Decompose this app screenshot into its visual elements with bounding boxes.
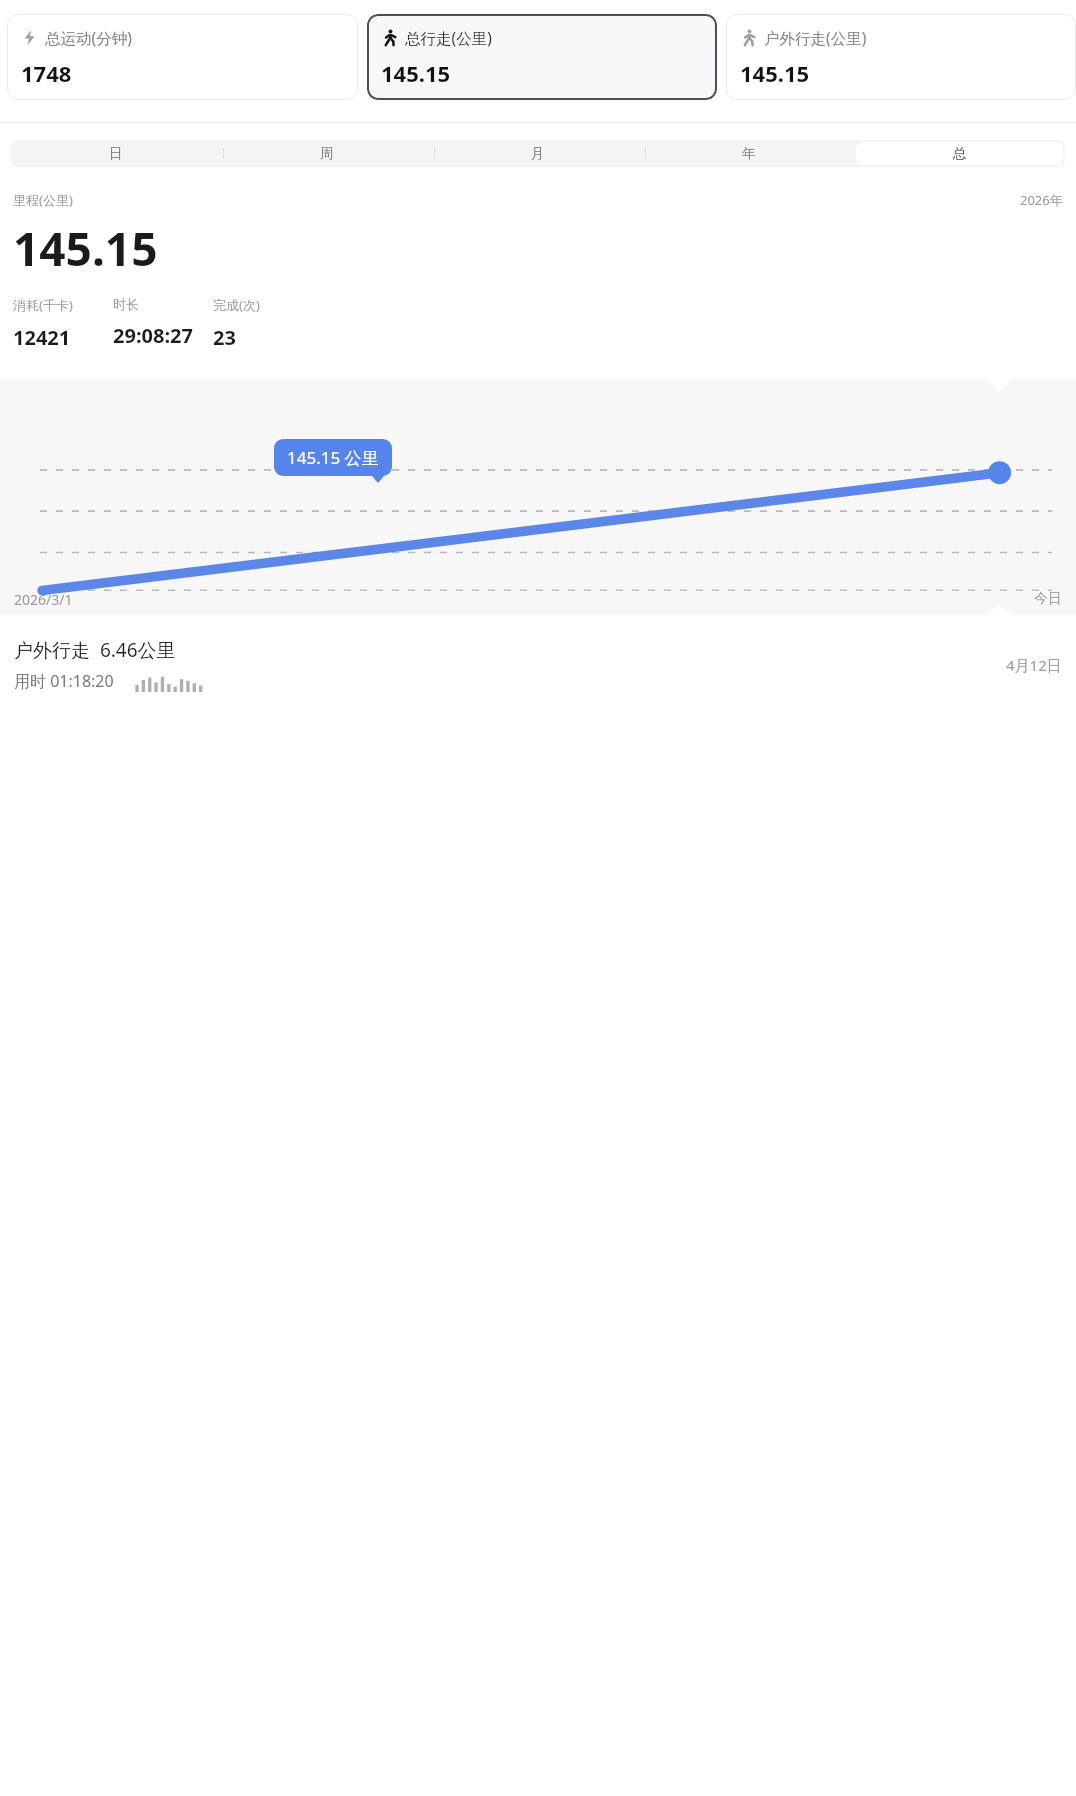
staticText: 今日 xyxy=(1034,590,1062,608)
staticText: 29:08:27 xyxy=(113,322,193,349)
staticText: 2026年 xyxy=(1020,191,1063,209)
staticText: 总运动(分钟) xyxy=(45,27,132,48)
button[interactable]: 户外行走 6.46公里 xyxy=(0,637,1076,692)
staticText: 月 xyxy=(531,145,545,162)
button[interactable]: 总 xyxy=(856,142,1063,165)
staticText: 消耗(千卡) xyxy=(13,296,73,314)
staticText: 里程(公里) xyxy=(13,191,73,209)
button[interactable]: 总行走(公里) xyxy=(367,14,717,100)
button[interactable]: 总运动(分钟) xyxy=(7,14,358,100)
staticText: 用时 01:18:20 xyxy=(14,670,114,692)
button[interactable]: 户外行走(公里) xyxy=(726,14,1076,100)
staticText: 总行走(公里) xyxy=(405,27,492,48)
staticText: 145.15 公里 xyxy=(287,446,379,469)
staticText: 145.15 xyxy=(740,58,810,88)
button[interactable]: 年 xyxy=(645,142,852,165)
staticText: 4月12日 xyxy=(1006,655,1062,675)
staticText: 时长 xyxy=(113,296,139,312)
staticText: 年 xyxy=(742,145,756,162)
staticText: 总 xyxy=(953,145,967,162)
button[interactable]: 月 xyxy=(434,142,641,165)
staticText: 日 xyxy=(109,145,123,162)
staticText: 145.15 xyxy=(13,217,158,280)
staticText: 12421 xyxy=(13,324,71,351)
staticText: 户外行走 6.46公里 xyxy=(14,637,176,663)
staticText: 户外行走(公里) xyxy=(764,27,867,48)
staticText: 23 xyxy=(213,324,236,351)
button[interactable]: 日 xyxy=(13,142,219,165)
button[interactable]: 周 xyxy=(223,142,430,165)
staticText: 145.15 xyxy=(381,58,451,88)
staticText: 完成(次) xyxy=(213,296,260,314)
staticText: 周 xyxy=(320,145,334,162)
staticText: 1748 xyxy=(21,58,72,88)
staticText: 2026/3/1 xyxy=(14,590,73,609)
